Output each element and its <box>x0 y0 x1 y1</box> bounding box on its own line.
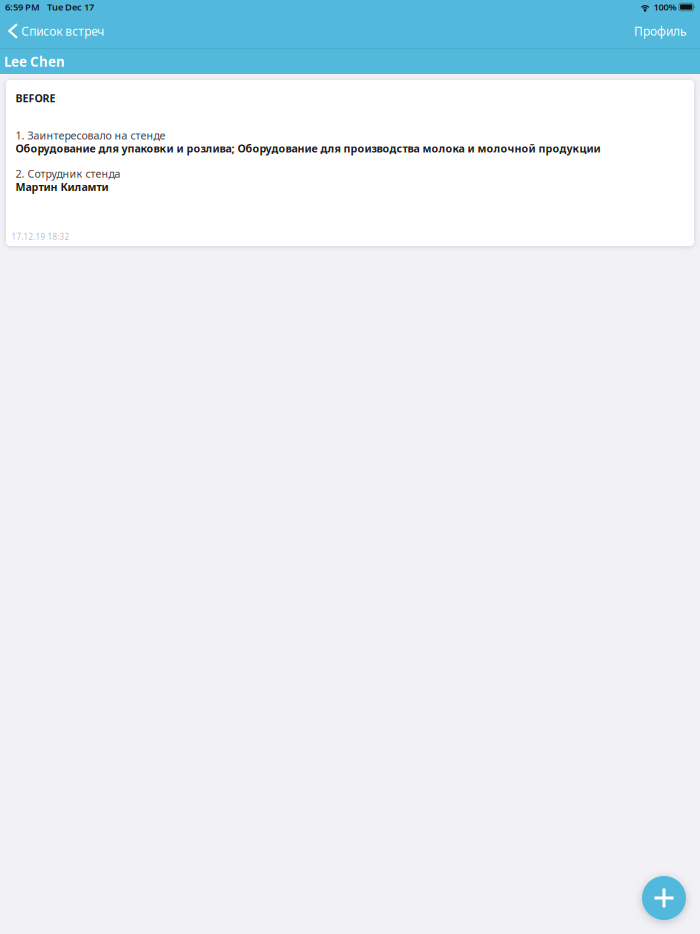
staticText: Профиль <box>634 23 687 39</box>
staticText: Мартин Киламти <box>15 180 108 194</box>
button[interactable]: Профиль <box>621 14 700 47</box>
staticText: 2. Сотрудник стенда <box>15 166 120 181</box>
staticText: Tue Dec 17 <box>47 1 94 13</box>
button[interactable]: BEFORE <box>6 80 694 246</box>
staticText: BEFORE <box>15 91 55 105</box>
staticText: 100% <box>653 1 676 13</box>
button[interactable]: Add meeting <box>642 876 686 920</box>
button[interactable]: Список встреч <box>0 14 112 47</box>
staticText: Список встреч <box>21 23 104 39</box>
staticText: Оборудование для упаковки и розлива; Обо… <box>15 141 600 155</box>
staticText: 1. Заинтересовало на стенде <box>15 128 165 142</box>
staticText: 17.12.19 18:32 <box>11 231 69 242</box>
staticText: Lee Chen <box>4 53 65 70</box>
staticText: 6:59 PM <box>5 1 40 13</box>
